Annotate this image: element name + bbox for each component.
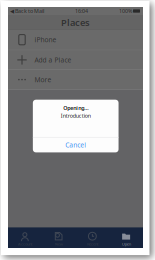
staticText: Open (122, 241, 131, 247)
staticText: Account (18, 241, 32, 247)
staticText: New (55, 241, 63, 247)
button[interactable]: Cancel (33, 137, 119, 152)
staticText: iPhone (34, 35, 56, 44)
staticText: Add a Place (34, 55, 71, 64)
staticText: Places (61, 16, 90, 28)
staticText: 100% (119, 7, 132, 15)
staticText: Recent (87, 241, 98, 247)
button[interactable]: Add a Place (8, 50, 143, 70)
staticText: Introduction (61, 112, 91, 119)
staticText: 16:04 (75, 7, 88, 15)
button[interactable]: Recent (75, 227, 109, 248)
staticText: Cancel (65, 140, 86, 149)
button[interactable]: Open (109, 227, 143, 248)
staticText: ◀ Back to Mail (10, 7, 44, 15)
button[interactable]: More (8, 70, 143, 90)
staticText: More (34, 75, 51, 84)
button[interactable]: Account (8, 227, 42, 248)
button[interactable]: New (42, 227, 76, 248)
staticText: Opening… (63, 104, 88, 111)
button[interactable]: iPhone (8, 30, 143, 50)
